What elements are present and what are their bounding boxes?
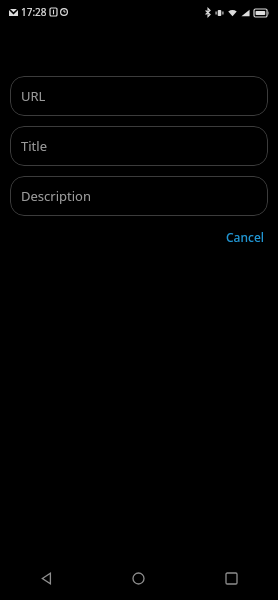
button[interactable]: URL [10, 76, 268, 116]
staticText: Description [21, 187, 91, 205]
staticText: URL [21, 87, 46, 105]
button[interactable]: Cancel [221, 225, 270, 249]
button[interactable]: Description [10, 176, 268, 216]
button[interactable]: Title [10, 126, 268, 166]
staticText: Title [21, 137, 47, 155]
button[interactable]: Back [0, 556, 92, 600]
staticText: 17:28 [21, 5, 47, 19]
button[interactable]: Home [92, 556, 185, 600]
staticText: Cancel [226, 229, 265, 245]
button[interactable]: Recent apps [185, 556, 278, 600]
